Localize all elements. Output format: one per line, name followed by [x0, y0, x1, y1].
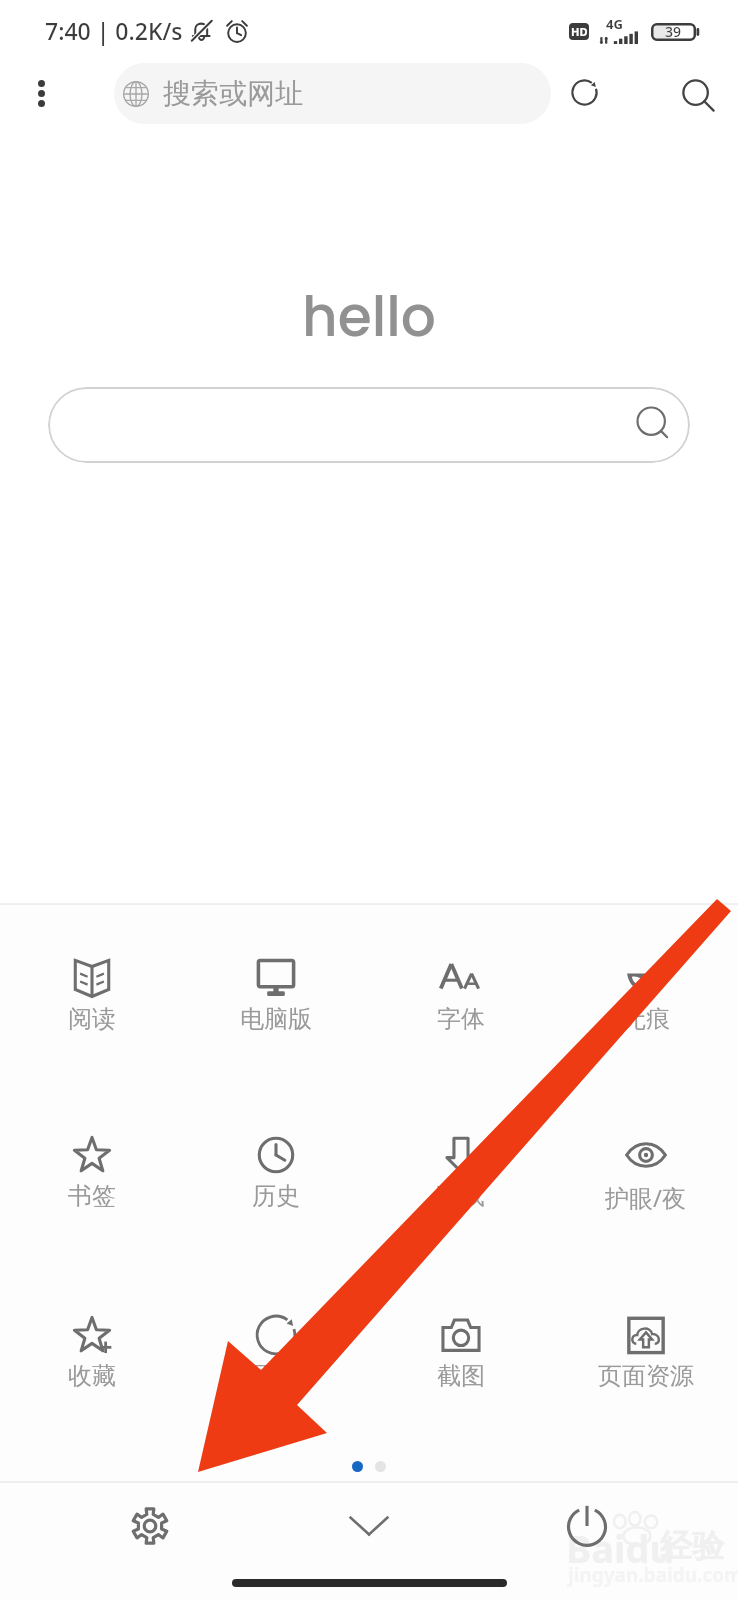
button[interactable]: Settings: [106, 1483, 194, 1568]
staticText: 字体: [437, 1004, 485, 1034]
button[interactable]: 电脑版: [184, 956, 368, 1034]
staticText: 页面资源: [598, 1361, 694, 1391]
staticText: 下载: [437, 1181, 485, 1211]
staticText: 阅读: [68, 1004, 116, 1034]
button[interactable]: [48, 387, 690, 463]
staticText: 39: [665, 22, 682, 41]
button[interactable]: 页面资源: [553, 1313, 738, 1391]
button[interactable]: 刷新: [184, 1313, 368, 1391]
button[interactable]: 搜索或网址: [114, 63, 551, 124]
staticText: 4G: [606, 15, 623, 33]
button[interactable]: 护眼/夜: [553, 1133, 738, 1214]
button[interactable]: Exit: [543, 1483, 631, 1568]
button[interactable]: 收藏: [0, 1313, 184, 1391]
button[interactable]: 书签: [0, 1133, 184, 1211]
button[interactable]: 无痕: [553, 956, 738, 1034]
staticText: 刷新: [252, 1361, 300, 1391]
button[interactable]: More options: [11, 63, 71, 124]
staticText: 电脑版: [240, 1004, 312, 1034]
button[interactable]: Collapse panel: [325, 1483, 413, 1568]
staticText: 截图: [437, 1361, 485, 1391]
button[interactable]: 历史: [184, 1133, 368, 1211]
staticText: 护眼/夜: [605, 1181, 686, 1214]
staticText: 7:40 | 0.2K/s: [45, 15, 183, 46]
staticText: 经验: [660, 1526, 724, 1566]
staticText: 收藏: [68, 1361, 116, 1391]
button[interactable]: Refresh: [553, 61, 616, 124]
button[interactable]: 字体: [368, 956, 553, 1034]
staticText: 历史: [252, 1181, 300, 1211]
staticText: jingyan.baidu.com: [568, 1562, 738, 1588]
button[interactable]: Search: [667, 64, 730, 127]
staticText: 无痕: [622, 1004, 670, 1034]
staticText: hello: [302, 278, 436, 355]
button[interactable]: 截图: [368, 1313, 553, 1391]
staticText: HD: [571, 24, 588, 39]
button[interactable]: 阅读: [0, 956, 184, 1034]
staticText: 书签: [68, 1181, 116, 1211]
staticText: Baidu: [566, 1522, 675, 1574]
staticText: 搜索或网址: [163, 76, 303, 111]
button[interactable]: 下载: [368, 1133, 553, 1211]
